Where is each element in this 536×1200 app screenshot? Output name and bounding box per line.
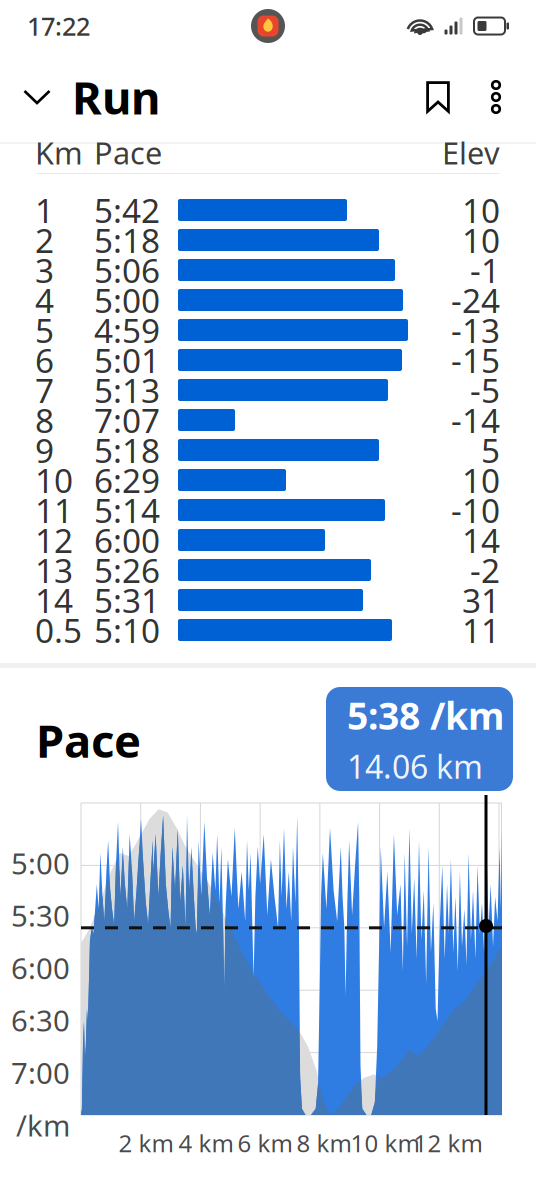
staticText: 9 xyxy=(35,428,54,472)
button[interactable]: 8 xyxy=(0,405,536,435)
staticText: 2 xyxy=(35,218,54,262)
staticText: 10 xyxy=(462,218,500,262)
button[interactable]: More options xyxy=(478,71,514,123)
staticText: 7 xyxy=(35,368,54,412)
button[interactable]: 1 xyxy=(0,195,536,225)
button[interactable]: 2 xyxy=(0,225,536,255)
staticText: -14 xyxy=(451,398,500,442)
staticText: 10 km xyxy=(350,1127,419,1159)
staticText: 14 xyxy=(462,518,500,562)
button[interactable]: 4 xyxy=(0,285,536,315)
staticText: 7:07 xyxy=(94,398,160,442)
staticText: 5:38 /km xyxy=(347,690,504,740)
button[interactable]: 9 xyxy=(0,435,536,465)
button[interactable]: 6 xyxy=(0,345,536,375)
button[interactable]: 14 xyxy=(0,585,536,615)
staticText: 10 xyxy=(462,458,500,502)
staticText: 0.5 xyxy=(35,608,82,652)
staticText: 14 xyxy=(35,578,73,622)
staticText: 1 xyxy=(35,188,54,232)
staticText: 5:31 xyxy=(94,578,160,622)
staticText: 5 xyxy=(35,308,54,352)
staticText: 8 xyxy=(35,398,54,442)
staticText: 5:01 xyxy=(94,338,160,382)
staticText: 4 km xyxy=(178,1127,233,1159)
staticText: -5 xyxy=(470,368,500,412)
button[interactable]: 10 xyxy=(0,465,536,495)
staticText: 5:30 xyxy=(11,896,70,935)
staticText: Elev xyxy=(442,132,500,173)
staticText: 5:00 xyxy=(11,843,70,882)
staticText: 5:14 xyxy=(94,488,160,532)
button[interactable]: 13 xyxy=(0,555,536,585)
button[interactable]: Save activity xyxy=(418,71,458,123)
button[interactable]: Collapse xyxy=(16,71,58,123)
button[interactable]: 7 xyxy=(0,375,536,405)
staticText: 2 km xyxy=(118,1127,173,1159)
staticText: 31 xyxy=(462,578,500,622)
staticText: 11 xyxy=(35,488,73,532)
staticText: 6:29 xyxy=(94,458,160,502)
staticText: 6 km xyxy=(237,1127,292,1159)
staticText: 5:18 xyxy=(94,428,160,472)
staticText: 12 km xyxy=(413,1127,482,1159)
button[interactable]: 12 xyxy=(0,525,536,555)
staticText: 5:26 xyxy=(94,548,160,592)
staticText: 5:13 xyxy=(94,368,160,412)
button[interactable]: 11 xyxy=(0,495,536,525)
staticText: 14.06 km xyxy=(347,745,483,787)
staticText: 11 xyxy=(462,608,500,652)
staticText: 6:00 xyxy=(11,948,70,987)
staticText: -1 xyxy=(470,248,500,292)
staticText: -13 xyxy=(451,308,500,352)
staticText: -2 xyxy=(470,548,500,592)
staticText: 5:00 xyxy=(94,278,160,322)
staticText: 3 xyxy=(35,248,54,292)
staticText: -24 xyxy=(451,278,500,322)
staticText: 4 xyxy=(35,278,54,322)
staticText: /km xyxy=(16,1105,70,1144)
staticText: 5:18 xyxy=(94,218,160,262)
staticText: 5 xyxy=(481,428,500,472)
staticText: 5:10 xyxy=(94,608,160,652)
staticText: 6:00 xyxy=(94,518,160,562)
staticText: 10 xyxy=(462,188,500,232)
staticText: Run xyxy=(72,67,160,127)
button[interactable]: 5 xyxy=(0,315,536,345)
staticText: 5:06 xyxy=(94,248,160,292)
staticText: 13 xyxy=(35,548,73,592)
staticText: Km xyxy=(35,132,83,173)
staticText: -10 xyxy=(451,488,500,532)
staticText: 7:00 xyxy=(11,1053,70,1092)
staticText: 5:42 xyxy=(94,188,160,232)
staticText: 6 xyxy=(35,338,54,382)
staticText: 6:30 xyxy=(11,1001,70,1040)
staticText: 12 xyxy=(35,518,73,562)
staticText: 8 km xyxy=(296,1127,351,1159)
staticText: Pace xyxy=(94,132,162,173)
staticText: 4:59 xyxy=(94,308,160,352)
staticText: Pace xyxy=(36,710,141,770)
button[interactable]: 3 xyxy=(0,255,536,285)
staticText: 17:22 xyxy=(27,9,90,43)
staticText: 10 xyxy=(35,458,73,502)
staticText: -15 xyxy=(451,338,500,382)
button[interactable]: 0.5 xyxy=(0,615,536,645)
